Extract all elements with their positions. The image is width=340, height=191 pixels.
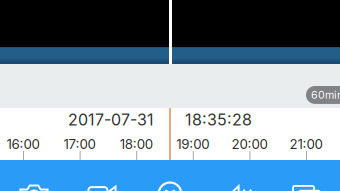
button[interactable]: 60min <box>306 86 340 104</box>
staticText: 18:00 <box>120 136 153 152</box>
button[interactable]: Record <box>68 180 136 191</box>
staticText: 60min <box>311 88 340 101</box>
staticText: 21:00 <box>289 136 322 152</box>
staticText: 17:00 <box>64 136 96 152</box>
staticText: 19:00 <box>176 136 209 152</box>
button[interactable]: Talk <box>136 180 204 191</box>
staticText: 16:00 <box>6 136 39 152</box>
staticText: 18:35:28 <box>185 110 252 129</box>
button[interactable]: Screen layout <box>272 180 340 191</box>
staticText: 2017-07-31 <box>68 110 154 129</box>
staticText: 20:00 <box>231 136 267 152</box>
button[interactable]: Snapshot <box>0 180 68 191</box>
button[interactable]: Audio <box>204 180 272 191</box>
